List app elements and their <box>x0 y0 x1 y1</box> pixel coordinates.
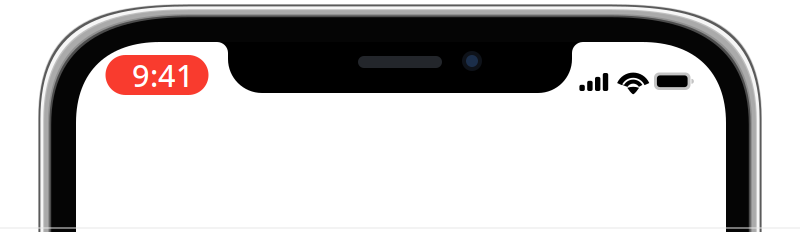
button[interactable]: 9:41 <box>105 55 208 95</box>
staticText: 9:41 <box>132 55 194 95</box>
